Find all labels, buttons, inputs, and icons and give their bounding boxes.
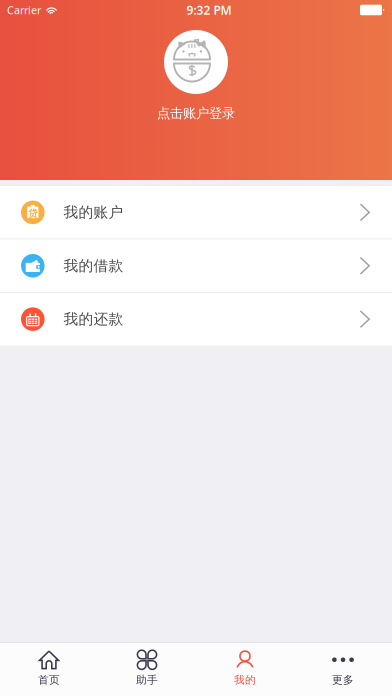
staticText: 点击账户登录 bbox=[157, 105, 235, 121]
staticText: 贷 bbox=[28, 208, 37, 219]
button[interactable]: 贷 bbox=[0, 186, 392, 239]
button[interactable]: 助手 bbox=[98, 643, 196, 696]
button[interactable]: 我的借款 bbox=[0, 239, 392, 292]
staticText: 更多 bbox=[332, 673, 354, 687]
staticText: 我的还款 bbox=[64, 310, 124, 328]
button[interactable]: 我的 bbox=[196, 643, 294, 696]
button[interactable]: 点击账户登录 bbox=[157, 30, 235, 121]
staticText: Carrier bbox=[7, 3, 41, 17]
staticText: 我的账户 bbox=[64, 203, 124, 221]
button[interactable]: 首页 bbox=[0, 643, 98, 696]
staticText: 我的 bbox=[234, 673, 256, 687]
staticText: 首页 bbox=[38, 673, 60, 687]
button[interactable]: 更多 bbox=[294, 643, 392, 696]
button[interactable]: 我的还款 bbox=[0, 293, 392, 345]
staticText: 9:32 PM bbox=[186, 2, 231, 18]
staticText: 我的借款 bbox=[64, 257, 124, 275]
staticText: 助手 bbox=[136, 673, 158, 687]
